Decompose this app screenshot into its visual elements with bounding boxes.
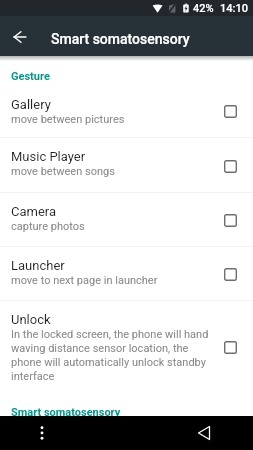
staticText: 14:10 [220, 2, 248, 15]
staticText: Unlock [11, 312, 51, 327]
button[interactable]: Toggle Camera [215, 205, 245, 235]
button[interactable]: Camera [0, 193, 253, 246]
staticText: 42% [193, 2, 214, 15]
button[interactable]: Back [190, 419, 218, 447]
staticText: Launcher [11, 258, 65, 273]
button[interactable]: Toggle Launcher [215, 259, 245, 289]
button[interactable]: Menu [28, 419, 56, 447]
button[interactable]: Launcher [0, 247, 253, 300]
button[interactable]: Unlock [0, 301, 253, 397]
staticText: move between songs [11, 164, 115, 178]
staticText: Gesture [11, 70, 50, 83]
staticText: Smart somatosensory [51, 31, 190, 47]
staticText: move to next page in launcher [11, 273, 158, 287]
button[interactable]: Back [4, 21, 36, 53]
staticText: move between pictures [11, 112, 125, 126]
staticText: Smart somatosensory [11, 406, 121, 416]
staticText: In the locked screen, the phone will han… [11, 327, 213, 383]
staticText: Camera [11, 204, 57, 219]
button[interactable]: Toggle Gallery [215, 96, 245, 126]
button[interactable]: Toggle Music Player [215, 151, 245, 181]
staticText: Music Player [11, 149, 86, 164]
button[interactable]: Gallery [0, 97, 253, 137]
staticText: capture photos [11, 219, 85, 233]
staticText: Gallery [11, 97, 51, 112]
button[interactable]: Music Player [0, 138, 253, 192]
button[interactable]: Toggle Unlock [215, 332, 245, 362]
